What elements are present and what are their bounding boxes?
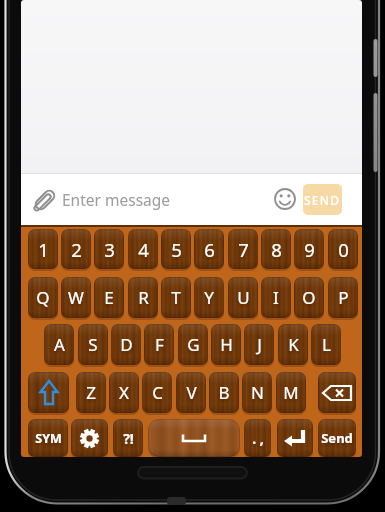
staticText: 1 [38,237,49,262]
button[interactable]: ?! [113,419,143,457]
button[interactable]: 6 [194,229,224,269]
staticText: F [155,333,164,356]
staticText: SYM [35,430,62,447]
button[interactable]: W [61,277,91,318]
button[interactable]: 0 [328,229,358,269]
button[interactable]: H [211,324,241,365]
staticText: J [257,333,262,356]
button[interactable]: C [142,372,172,413]
staticText: 8 [271,237,282,262]
staticText: SEND [304,192,341,208]
button[interactable] [318,372,356,413]
button[interactable]: 5 [161,229,191,269]
button[interactable]: O [294,277,324,318]
button[interactable]: 7 [228,229,258,269]
staticText: 7 [238,237,249,262]
button[interactable]: . , [244,419,271,457]
button[interactable]: 9 [294,229,324,269]
staticText: Enter message [62,189,171,210]
button[interactable]: Enter message [62,174,262,225]
button[interactable]: T [161,277,191,318]
staticText: 2 [71,237,82,262]
button[interactable]: P [328,277,358,318]
staticText: K [288,333,299,356]
staticText: T [171,286,181,309]
button[interactable]: V [176,372,206,413]
button[interactable] [277,419,313,457]
button[interactable]: B [209,372,239,413]
staticText: 5 [171,237,182,262]
button[interactable]: S [78,324,108,365]
button[interactable]: 3 [94,229,124,269]
button[interactable]: K [278,324,308,365]
button[interactable]: E [94,277,124,318]
staticText: V [186,381,197,404]
button[interactable]: SEND [303,184,342,215]
button[interactable]: Send [318,419,356,457]
button[interactable]: R [128,277,158,318]
staticText: H [220,333,233,356]
button[interactable]: N [242,372,272,413]
button[interactable]: Q [28,277,58,318]
staticText: 0 [338,237,349,262]
button[interactable]: J [244,324,274,365]
button[interactable]: D [111,324,141,365]
staticText: 3 [104,237,115,262]
staticText: S [88,333,98,356]
button[interactable]: Y [194,277,224,318]
staticText: 4 [138,237,149,262]
button[interactable] [148,419,240,457]
staticText: A [54,333,65,356]
staticText: X [119,381,129,404]
staticText: B [218,381,230,404]
button[interactable]: I [261,277,291,318]
staticText: I [273,286,279,309]
button[interactable]: 8 [261,229,291,269]
button[interactable] [269,183,300,214]
staticText: Z [86,381,96,404]
staticText: W [68,286,84,309]
button[interactable]: X [109,372,139,413]
button[interactable]: F [144,324,174,365]
staticText: P [338,286,349,309]
button[interactable]: U [228,277,258,318]
button[interactable]: M [276,372,306,413]
staticText: G [187,333,200,356]
staticText: 9 [304,237,315,262]
button[interactable]: A [44,324,74,365]
staticText: E [104,286,114,309]
staticText: ?! [123,429,134,448]
button[interactable]: SYM [28,419,68,457]
staticText: Send [321,429,353,447]
button[interactable]: G [178,324,208,365]
staticText: D [120,333,133,356]
staticText: M [283,381,299,404]
staticText: U [237,286,250,309]
button[interactable]: L [311,324,341,365]
staticText: Y [204,286,214,309]
button[interactable] [71,419,108,457]
staticText: C [152,381,163,404]
button[interactable]: Z [76,372,106,413]
staticText: . , [252,429,264,448]
button[interactable]: 1 [28,229,58,269]
staticText: R [138,286,149,309]
staticText: 6 [204,237,215,262]
staticText: N [251,381,264,404]
button[interactable] [28,372,69,413]
button[interactable]: 4 [128,229,158,269]
staticText: L [322,333,331,356]
button[interactable] [29,184,60,215]
staticText: O [302,286,316,309]
staticText: Q [36,286,50,309]
button[interactable]: 2 [61,229,91,269]
